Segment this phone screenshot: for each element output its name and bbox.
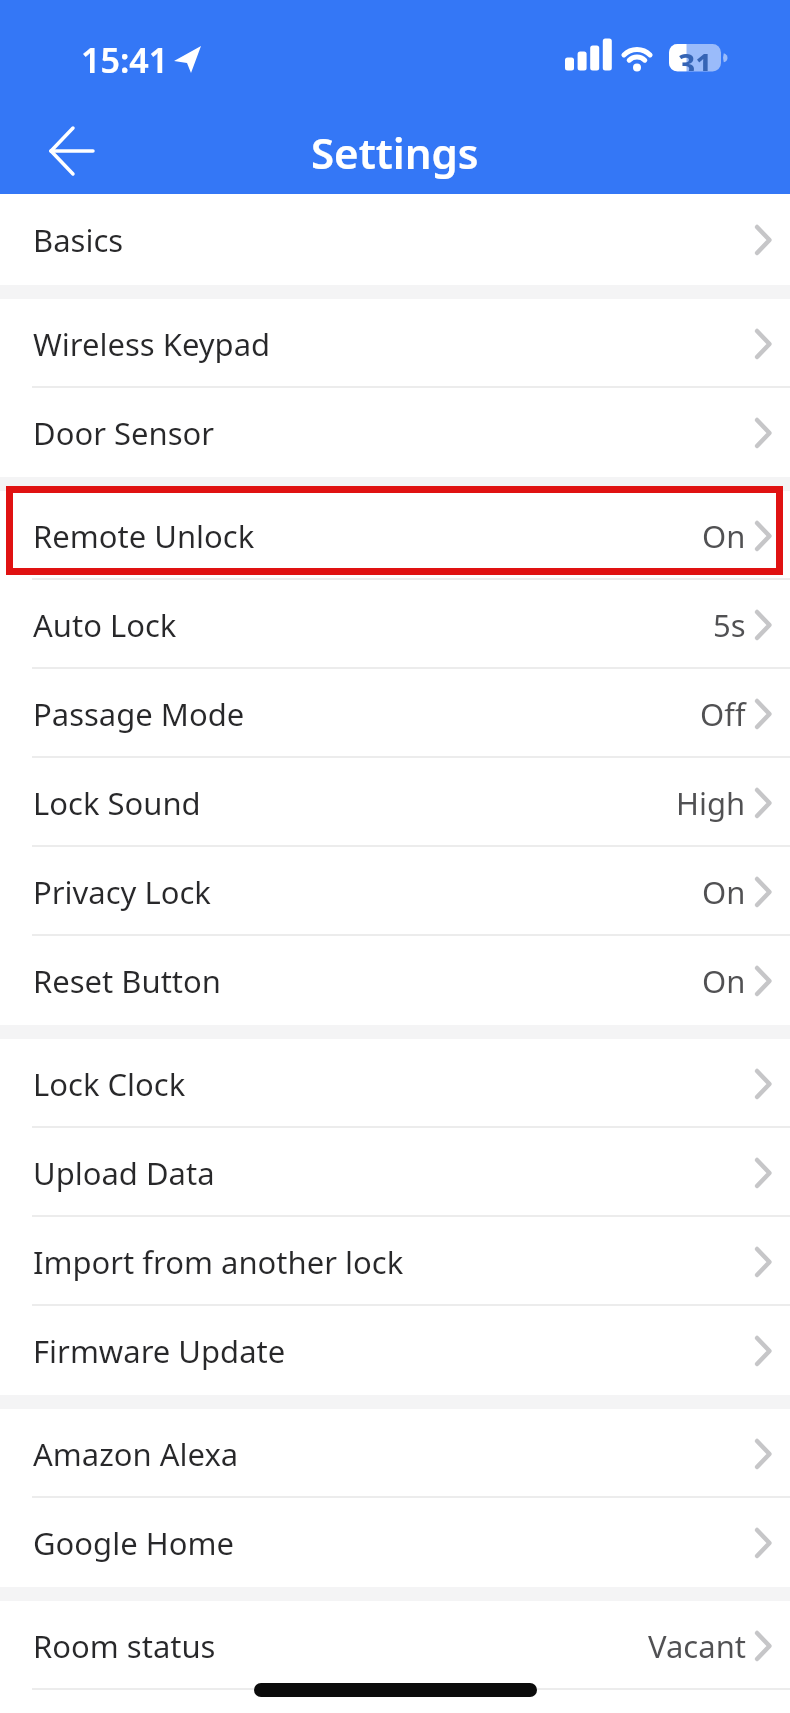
staticText: Basics	[33, 219, 124, 261]
staticText: Upload Data	[33, 1152, 215, 1194]
button[interactable]: Firmware Update	[0, 1306, 790, 1395]
button[interactable]: Room status	[0, 1601, 790, 1690]
staticText: Import from another lock	[33, 1241, 404, 1283]
staticText: On	[702, 960, 746, 1002]
button[interactable]	[48, 126, 96, 178]
staticText: Google Home	[33, 1522, 234, 1564]
button[interactable]: Auto Lock	[0, 580, 790, 669]
staticText: On	[702, 871, 746, 913]
staticText: Remote Unlock	[33, 515, 255, 557]
staticText: Passage Mode	[33, 693, 245, 735]
staticText: Firmware Update	[33, 1330, 286, 1372]
staticText: Vacant	[648, 1625, 746, 1667]
staticText: 5s	[713, 604, 746, 646]
button[interactable]: Remote Unlock	[0, 491, 790, 580]
button[interactable]: Wireless Keypad	[0, 299, 790, 388]
staticText: Door Sensor	[33, 412, 215, 454]
staticText: Auto Lock	[33, 604, 177, 646]
staticText: On	[702, 515, 746, 557]
button[interactable]: Import from another lock	[0, 1217, 790, 1306]
staticText: Wireless Keypad	[33, 323, 271, 365]
staticText: Room status	[33, 1625, 216, 1667]
staticText: High	[676, 782, 746, 824]
button[interactable]: Privacy Lock	[0, 847, 790, 936]
staticText: Privacy Lock	[33, 871, 211, 913]
staticText: 31	[678, 44, 713, 71]
staticText: Lock Clock	[33, 1063, 186, 1105]
staticText: Reset Button	[33, 960, 221, 1002]
button[interactable]: Upload Data	[0, 1128, 790, 1217]
staticText: 15:41	[81, 37, 169, 83]
staticText: Amazon Alexa	[33, 1433, 239, 1475]
button[interactable]: Passage Mode	[0, 669, 790, 758]
button[interactable]: Lock Clock	[0, 1039, 790, 1128]
button[interactable]: Lock Sound	[0, 758, 790, 847]
button[interactable]: Reset Button	[0, 936, 790, 1025]
staticText: Off	[700, 693, 746, 735]
staticText: Lock Sound	[33, 782, 201, 824]
button[interactable]: Door Sensor	[0, 388, 790, 477]
button[interactable]: Basics	[0, 194, 790, 285]
button[interactable]: Amazon Alexa	[0, 1409, 790, 1498]
button[interactable]: Google Home	[0, 1498, 790, 1587]
staticText: Settings	[311, 124, 479, 181]
